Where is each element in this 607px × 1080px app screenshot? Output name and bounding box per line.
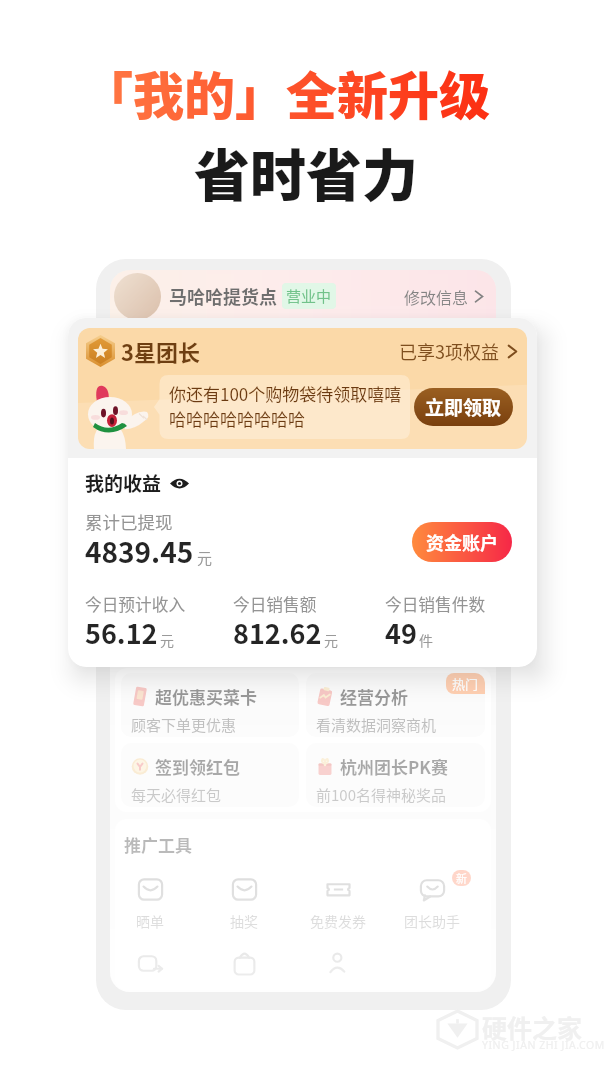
staticText: 元 [197,547,213,569]
staticText: 元 [160,630,174,650]
staticText: 件 [419,630,433,650]
staticText: 3星团长 [121,335,200,367]
button[interactable]: 3星团长 [86,328,518,374]
staticText: 热门 [452,674,479,693]
staticText: 56.12 [85,613,158,652]
staticText: YING JIAN ZHI JIA.COM [482,1038,605,1052]
staticText: 你还有100个购物袋待领取嘻嘻哈哈哈哈哈哈哈哈 [169,381,409,431]
staticText: 我的收益 [85,469,162,497]
staticText: 顾客下单更优惠 [131,714,237,736]
staticText: 马哈哈提货点 [169,283,277,309]
staticText: 累计已提现 [85,509,173,534]
staticText: 前100名得神秘奖品 [316,784,446,806]
staticText: 元 [324,630,338,650]
button[interactable]: tool [117,949,183,978]
button[interactable]: 抽奖 [211,875,277,931]
staticText: 硬件之家 [482,1009,583,1045]
staticText: 新 [456,870,467,886]
button[interactable]: 今日销售额 [233,592,385,655]
staticText: 修改信息 [404,285,469,308]
staticText: 立即领取 [425,393,502,421]
staticText: 812.62 [233,613,322,652]
staticText: 推广工具 [124,832,192,857]
button[interactable]: 今日销售件数 [385,592,512,655]
button[interactable]: 杭州团长PK赛 [306,743,485,807]
button[interactable]: 超优惠买菜卡 [121,673,299,737]
staticText: 今日销售件数 [385,592,486,616]
button[interactable]: 晒单 [117,875,183,931]
staticText: 营业中 [286,285,332,307]
staticText: 杭州团长PK赛 [340,754,449,779]
staticText: 4839.45 [85,531,194,572]
staticText: 团长助手 [404,911,460,931]
button[interactable]: 经营分析 [306,673,485,737]
button[interactable]: 马哈哈提货点 [114,270,484,322]
button[interactable]: tool [305,949,371,978]
staticText: 抽奖 [230,911,258,931]
staticText: 省时省力 [194,131,418,212]
button[interactable]: 立即领取 [414,388,513,426]
staticText: 49 [385,613,417,652]
staticText: 「我的」全新升级 [82,56,491,130]
staticText: 晒单 [136,911,164,931]
staticText: 经营分析 [340,684,408,709]
button[interactable]: 免费发券 [305,875,371,931]
staticText: 已享3项权益 [399,338,499,364]
staticText: 免费发券 [310,911,366,931]
staticText: 超优惠买菜卡 [155,684,257,709]
button[interactable]: 我的收益 [85,469,189,497]
staticText: 签到领红包 [155,754,240,779]
button[interactable]: 签到领红包 [121,743,299,807]
button[interactable]: tool [211,949,277,978]
staticText: 今日预计收入 [85,592,186,616]
staticText: 今日销售额 [233,592,317,616]
staticText: 每天必得红包 [131,784,222,806]
button[interactable]: 团长助手 [399,875,465,931]
button[interactable]: 资金账户 [412,522,512,562]
staticText: 看清数据洞察商机 [316,714,437,736]
staticText: 资金账户 [426,529,498,555]
button[interactable]: 今日预计收入 [85,592,233,655]
